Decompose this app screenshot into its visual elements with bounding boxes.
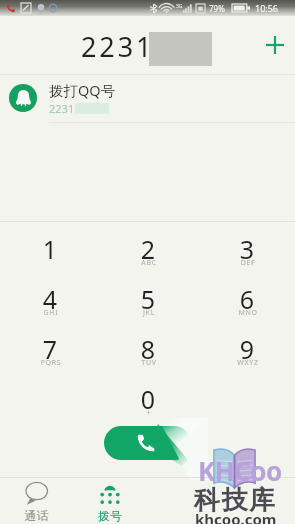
- staticText: WXYZ: [203, 358, 293, 368]
- button[interactable]: Add contact: [255, 16, 295, 74]
- staticText: DEF: [203, 258, 293, 268]
- staticText: 2: [103, 232, 193, 266]
- staticText: 8: [103, 332, 193, 366]
- staticText: 拨打QQ号: [49, 80, 116, 100]
- staticText: 9: [202, 332, 292, 366]
- staticText: 0: [103, 382, 193, 416]
- staticText: 7: [5, 332, 95, 366]
- staticText: +: [104, 408, 194, 418]
- button[interactable]: [147, 478, 221, 524]
- staticText: GHI: [6, 308, 96, 318]
- button[interactable]: 4: [5, 274, 95, 324]
- button[interactable]: 2: [103, 224, 193, 274]
- staticText: ABC: [104, 258, 194, 268]
- staticText: 3G: [176, 3, 183, 10]
- button[interactable]: 5: [103, 274, 193, 324]
- staticText: 1: [5, 232, 95, 266]
- button[interactable]: 拨打QQ号: [0, 74, 295, 122]
- staticText: 3: [202, 232, 292, 266]
- staticText: PQRS: [6, 358, 96, 368]
- staticText: 科技库: [194, 484, 277, 517]
- button[interactable]: 3: [202, 224, 292, 274]
- button[interactable]: Call: [104, 426, 191, 460]
- staticText: 拨号: [73, 508, 147, 523]
- button[interactable]: 拨号: [73, 478, 147, 524]
- staticText: 79%: [209, 3, 225, 14]
- staticText: JKL: [104, 308, 194, 318]
- staticText: TUV: [104, 358, 194, 368]
- button[interactable]: 1: [5, 224, 95, 274]
- staticText: 10:56: [255, 2, 279, 14]
- button[interactable]: 9: [202, 324, 292, 374]
- staticText: 4: [5, 282, 95, 316]
- button[interactable]: 8: [103, 324, 193, 374]
- staticText: KHCoo: [198, 453, 282, 488]
- button[interactable]: 0: [103, 374, 193, 424]
- staticText: 5: [103, 282, 193, 316]
- staticText: 2231: [81, 28, 155, 65]
- staticText: 6: [202, 282, 292, 316]
- button[interactable]: 通话: [0, 478, 73, 524]
- button[interactable]: [221, 478, 295, 524]
- button[interactable]: 7: [5, 324, 95, 374]
- staticText: 2231: [49, 101, 75, 116]
- button[interactable]: 6: [202, 274, 292, 324]
- staticText: 通话: [0, 508, 73, 523]
- staticText: MNO: [203, 308, 293, 318]
- staticText: khcoo.com: [195, 509, 277, 524]
